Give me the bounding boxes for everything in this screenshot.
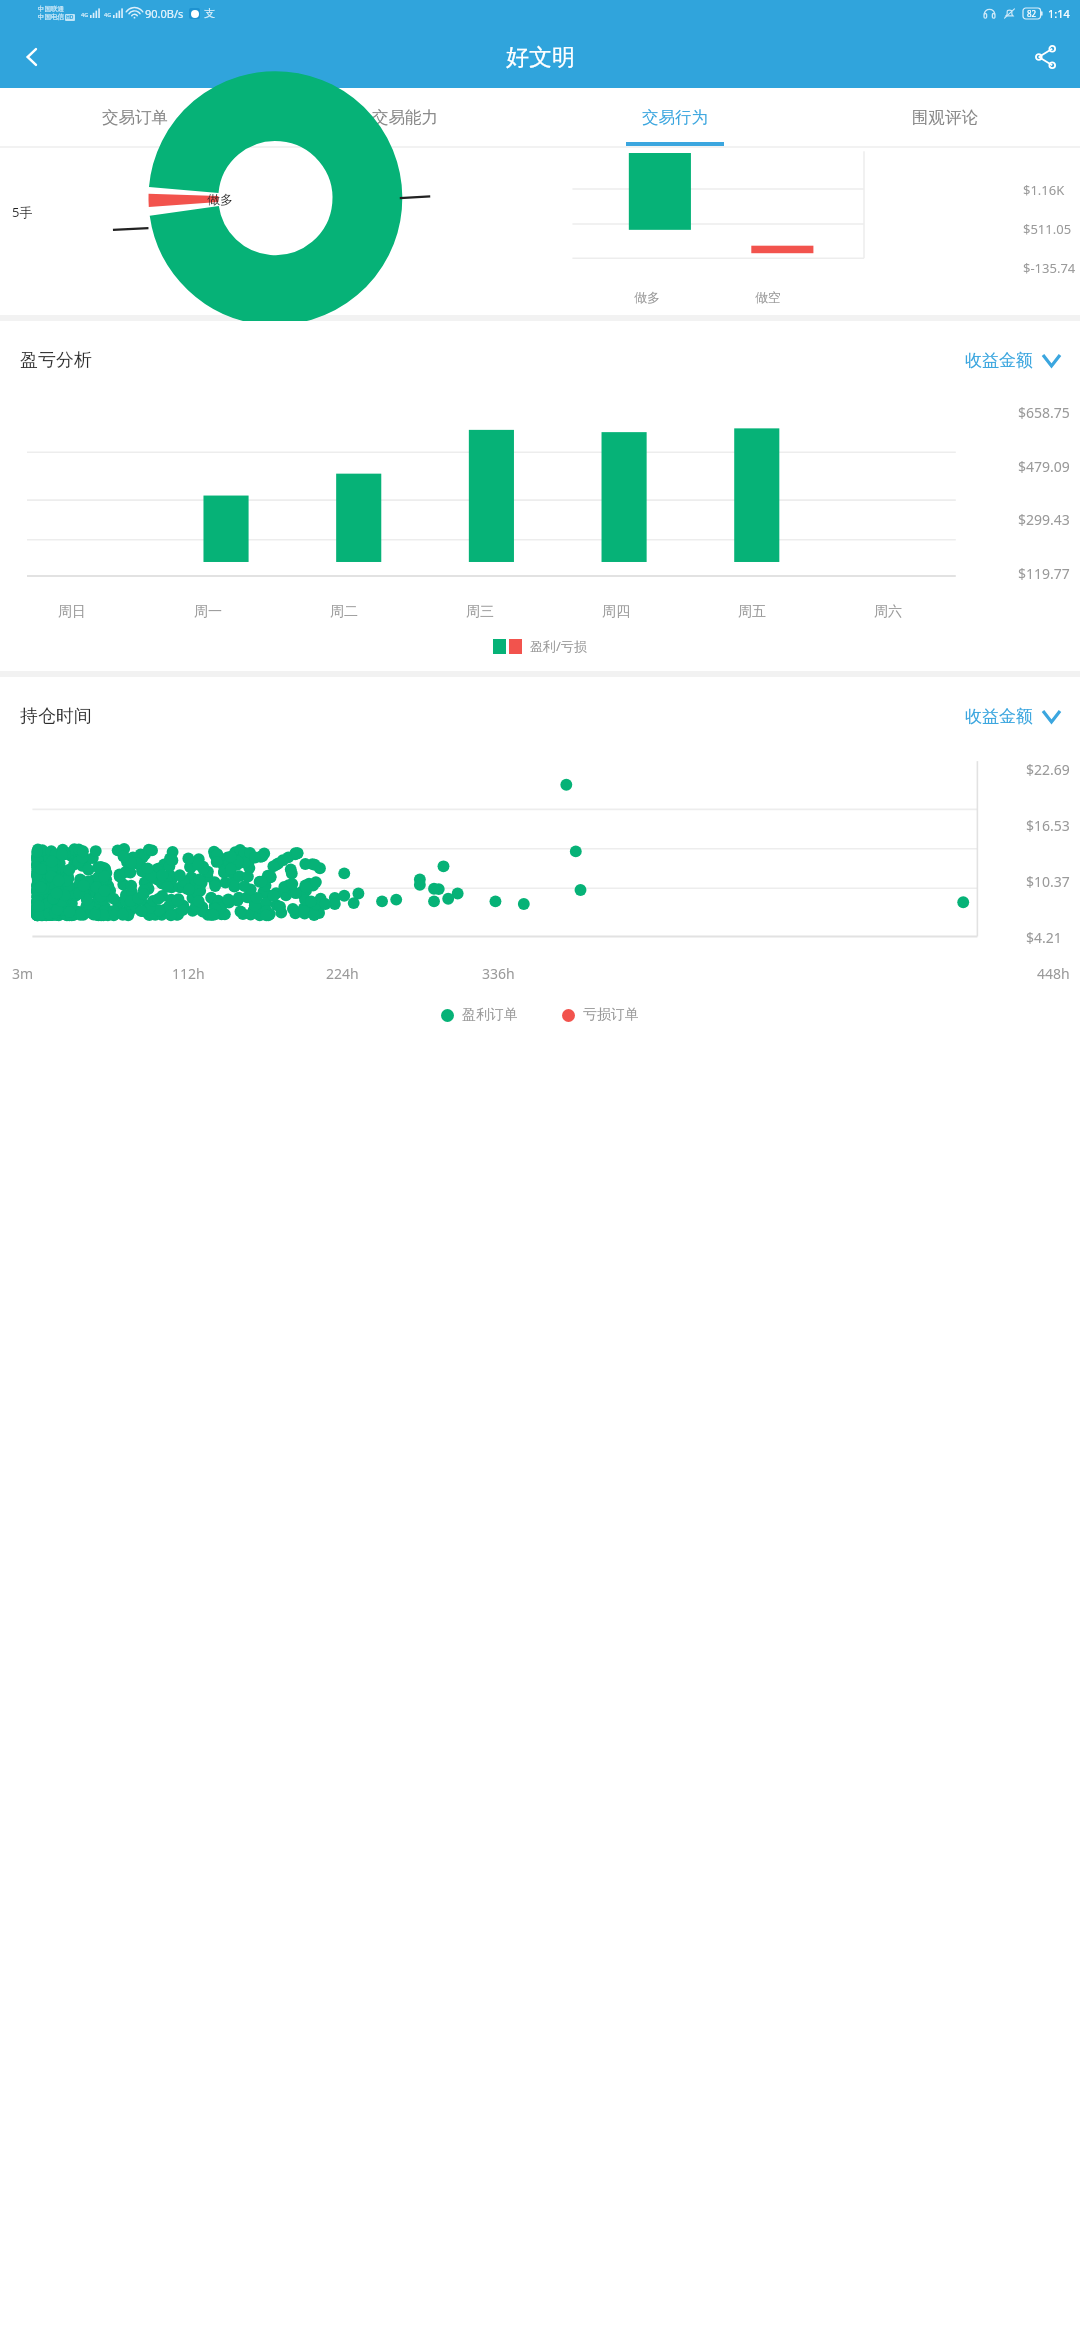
staticText: $4.21 [1026,928,1062,947]
staticText: 周日 [58,603,86,621]
staticText: 支 [204,6,215,20]
staticText: 好文明 [506,43,575,72]
staticText: 5手 [12,203,33,221]
button[interactable]: Back [4,29,60,85]
staticText: 盈利订单 [462,1006,518,1024]
staticText: 448h [1037,964,1070,983]
staticText: 交易能力 [372,107,438,128]
staticText: 4G [104,11,112,18]
button[interactable]: 交易能力 [270,88,540,146]
staticText: 围观评论 [912,107,978,128]
staticText: $22.69 [1026,760,1070,779]
staticText: 90.0B/s [145,6,184,21]
staticText: 交易订单 [102,107,168,128]
staticText: $16.53 [1026,816,1070,835]
button[interactable]: 围观评论 [810,88,1080,146]
staticText: $119.77 [1018,564,1070,583]
staticText: 交易行为 [642,107,708,128]
staticText: 中国电信 [38,13,64,21]
staticText: $1.16K [1023,181,1065,199]
button[interactable]: 收益金额 [965,350,1060,371]
button[interactable]: Share [1020,31,1072,83]
staticText: $479.09 [1018,457,1070,476]
staticText: 中国联通 [38,5,64,13]
staticText: 收益金额 [965,350,1033,371]
staticText: 224h [326,964,359,983]
button[interactable]: 收益金额 [965,706,1060,727]
staticText: 112h [172,964,205,983]
staticText: 4G [81,11,89,18]
staticText: 做空 [755,289,781,305]
staticText: 做多 [634,289,660,305]
staticText: $299.43 [1018,510,1070,529]
staticText: 周二 [330,603,358,621]
button[interactable]: 交易订单 [0,88,270,146]
staticText: $10.37 [1026,872,1070,891]
staticText: 盈利/亏损 [530,637,587,655]
staticText: 3m [12,964,34,983]
staticText: 1:14 [1048,6,1070,21]
staticText: 周五 [738,603,766,621]
staticText: 持仓时间 [20,705,92,728]
staticText: 82 [1027,8,1037,19]
staticText: $658.75 [1018,403,1070,422]
staticText: 盈亏分析 [20,349,92,372]
staticText: $-135.74 [1023,259,1076,277]
staticText: 周六 [874,603,902,621]
staticText: 周四 [602,603,630,621]
staticText: $511.05 [1023,220,1072,238]
staticText: 亏损订单 [583,1006,639,1024]
staticText: 336h [482,964,515,983]
staticText: 收益金额 [965,706,1033,727]
staticText: 周三 [466,603,494,621]
button[interactable]: 交易行为 [540,88,810,146]
staticText: HD [66,14,74,21]
staticText: 做多 [207,191,233,207]
staticText: 周一 [194,603,222,621]
